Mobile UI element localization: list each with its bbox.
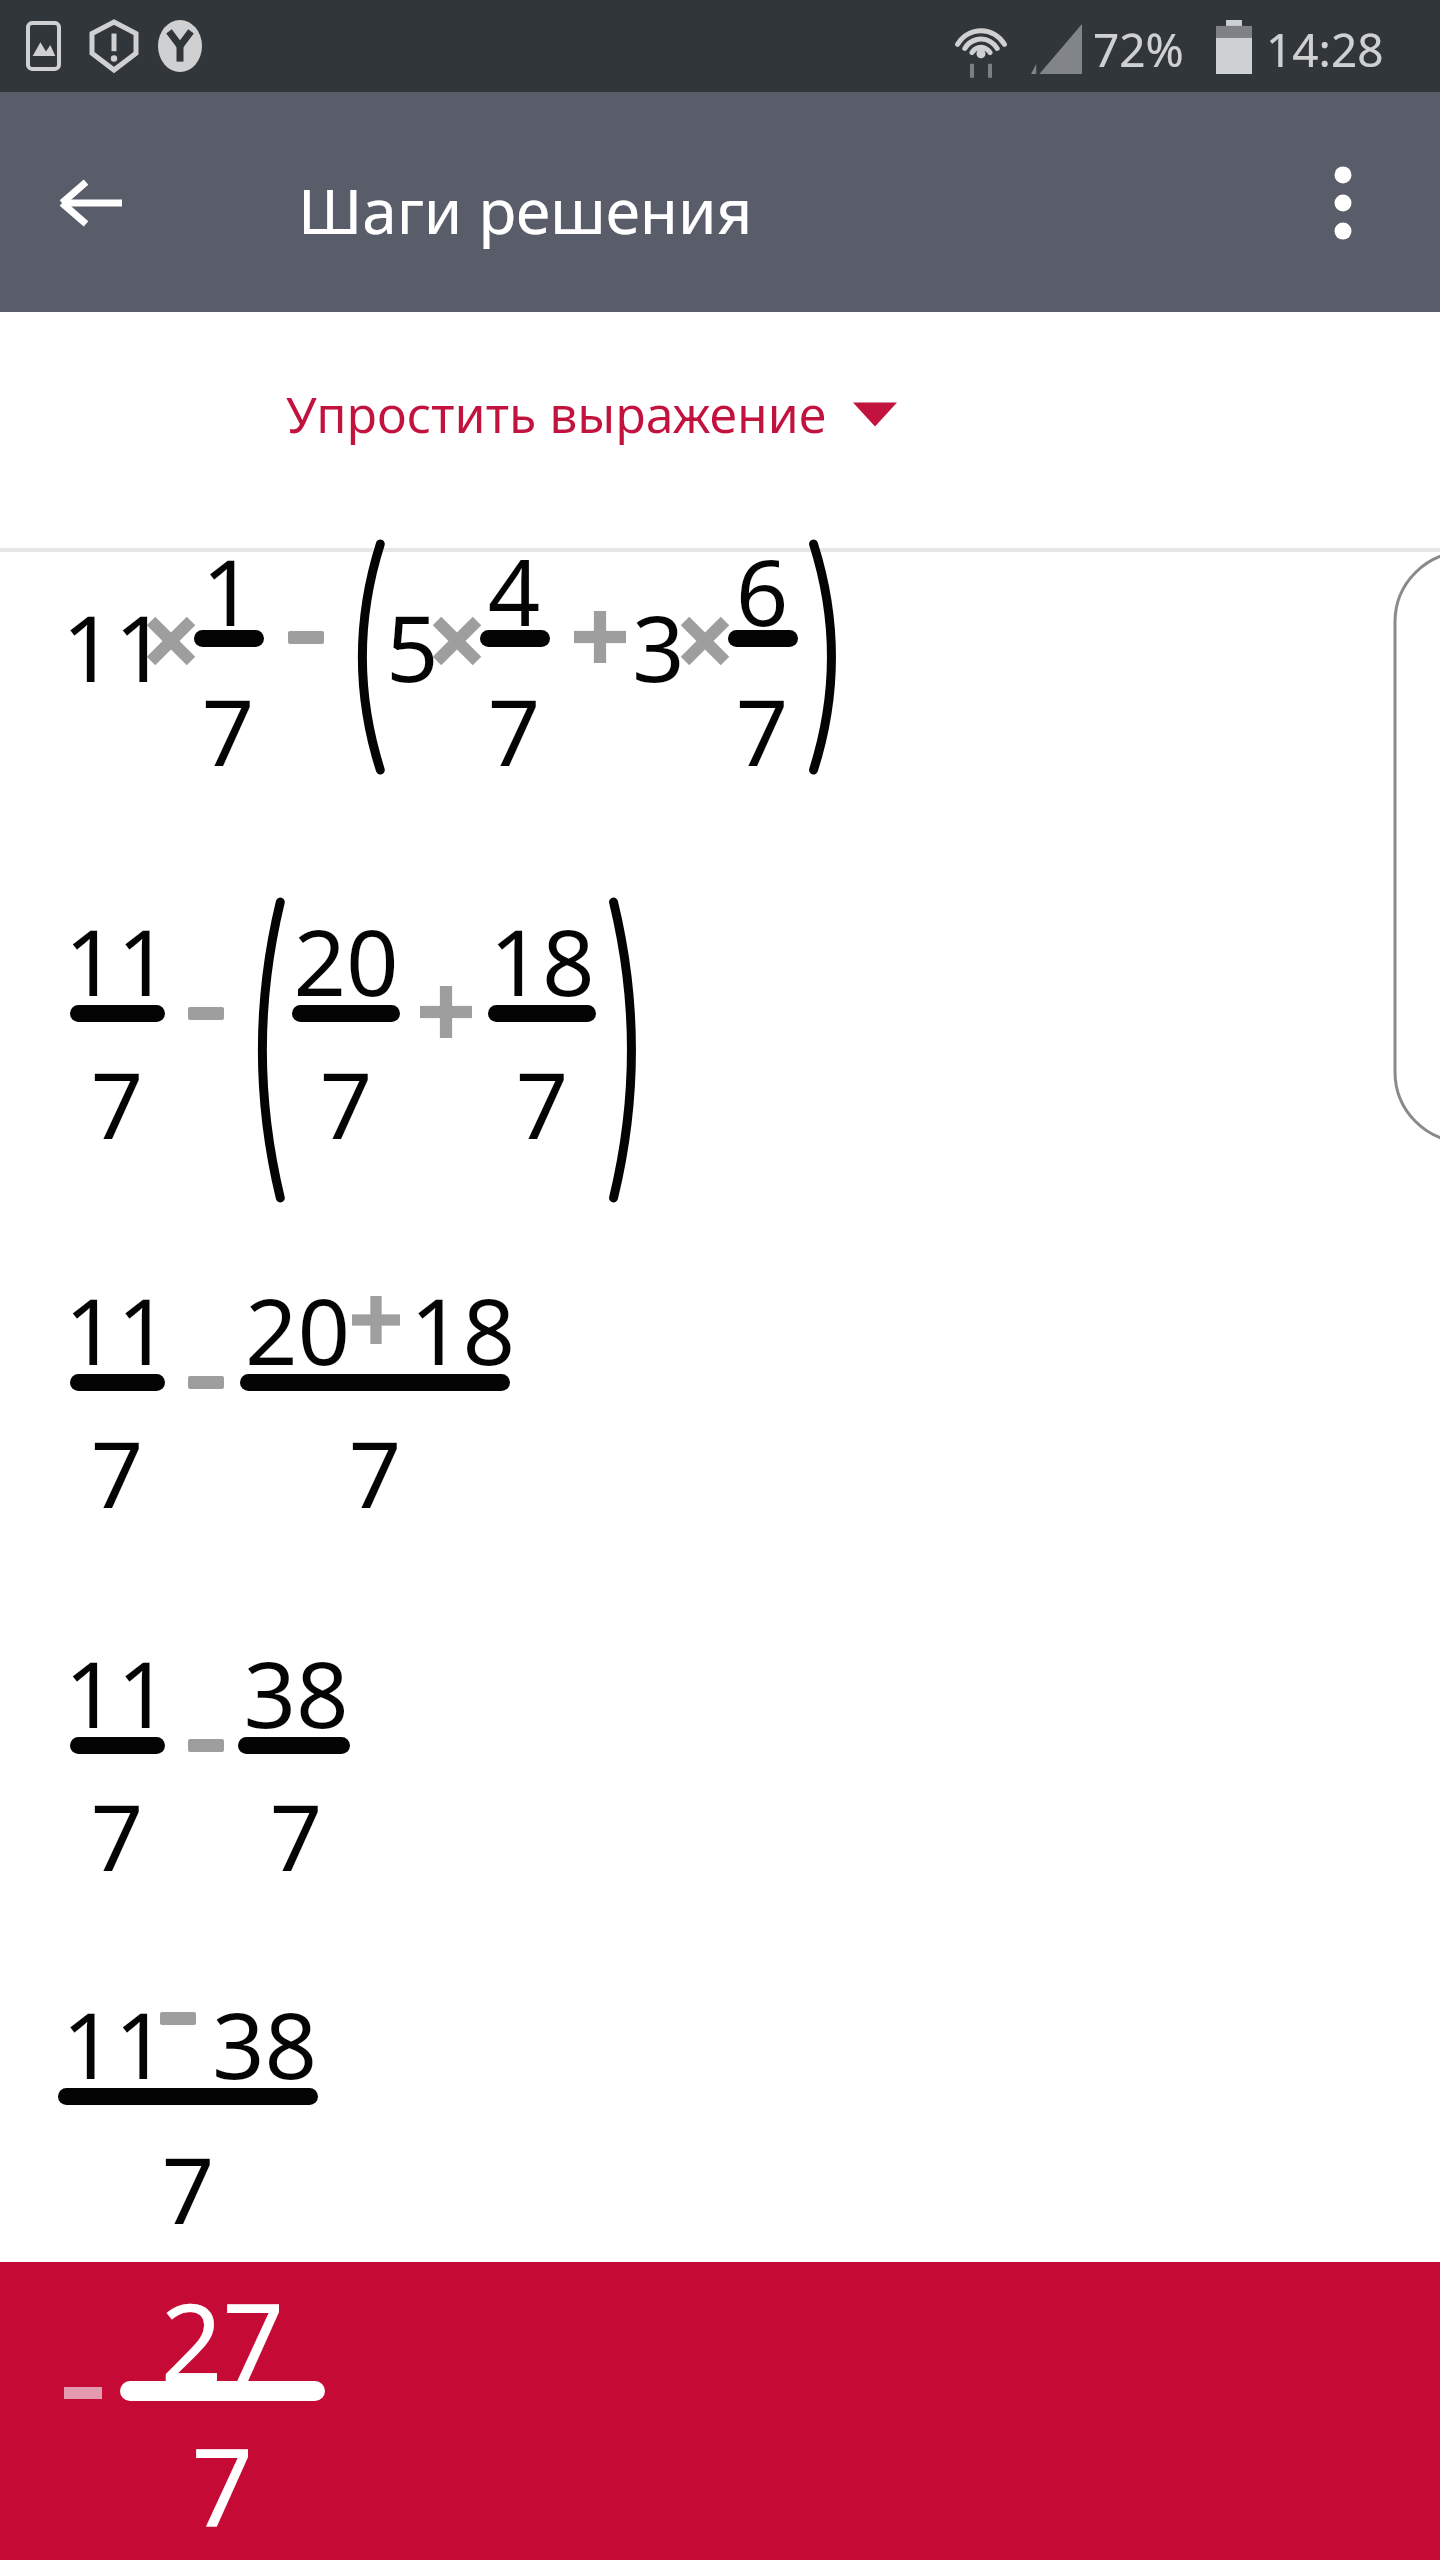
staticText: 7 xyxy=(190,668,266,793)
staticText: 18 xyxy=(482,898,602,1023)
staticText: 7 xyxy=(120,2412,325,2559)
staticText: 7 xyxy=(236,1773,356,1898)
staticText: 7 xyxy=(476,668,552,793)
staticText: 11 xyxy=(62,1267,172,1392)
staticText: 1 xyxy=(190,528,266,653)
staticText: 38 xyxy=(212,1981,318,2106)
staticText: 72% xyxy=(1093,18,1184,81)
staticText: 11 xyxy=(62,898,172,1023)
staticText: 7 xyxy=(724,668,800,793)
staticText: 20 xyxy=(245,1267,351,1392)
staticText: 3 xyxy=(632,584,685,709)
staticText: 7 xyxy=(482,1041,602,1166)
staticText: 7 xyxy=(62,1410,172,1535)
staticText: Упростить выражение xyxy=(286,380,827,448)
button[interactable]: Ещё xyxy=(1290,150,1396,256)
staticText: 4 xyxy=(476,528,552,653)
staticText: 7 xyxy=(286,1041,406,1166)
staticText: 18 xyxy=(410,1267,516,1392)
staticText: 6 xyxy=(724,528,800,653)
staticText: 7 xyxy=(62,1773,172,1898)
button[interactable]: 27 xyxy=(0,2262,1440,2560)
staticText: 11 xyxy=(62,1981,168,2106)
staticText: 7 xyxy=(240,1410,510,1535)
staticText: 11 xyxy=(62,584,168,709)
button[interactable]: Назад xyxy=(38,150,144,256)
staticText: 38 xyxy=(236,1630,356,1755)
staticText: 7 xyxy=(58,2126,318,2251)
staticText: 20 xyxy=(286,898,406,1023)
staticText: Шаги решения xyxy=(298,168,753,252)
staticText: 7 xyxy=(62,1041,172,1166)
staticText: 14:28 xyxy=(1266,18,1384,81)
button[interactable]: Упростить выражение xyxy=(270,370,913,458)
staticText: 11 xyxy=(62,1630,172,1755)
staticText: 27 xyxy=(120,2267,325,2414)
staticText: 5 xyxy=(386,584,439,709)
